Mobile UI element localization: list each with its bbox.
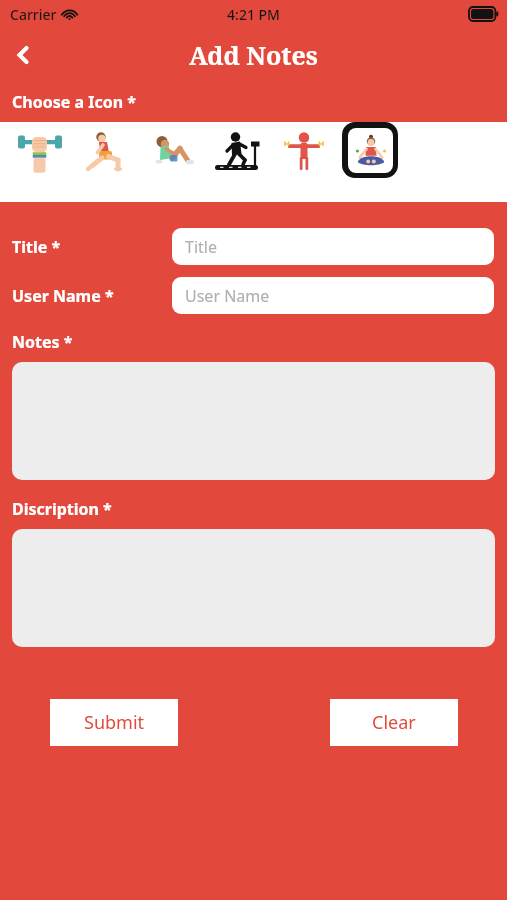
button[interactable]: Title: [172, 228, 494, 265]
staticText: Clear: [372, 710, 416, 735]
staticText: User Name: [185, 285, 270, 307]
staticText: Choose a Icon *: [12, 91, 136, 113]
staticText: Notes *: [12, 331, 73, 353]
button[interactable]: Yoga: [342, 122, 398, 178]
button[interactable]: [12, 362, 495, 480]
staticText: Carrier: [10, 5, 57, 24]
staticText: Discription *: [12, 498, 112, 520]
button[interactable]: [12, 529, 495, 647]
staticText: Add Notes: [189, 38, 318, 72]
button[interactable]: Weightlifting: [12, 122, 68, 178]
button[interactable]: Sit ups: [144, 122, 200, 178]
button[interactable]: Back: [0, 32, 46, 78]
button[interactable]: Lunge: [78, 122, 134, 178]
staticText: Title *: [12, 236, 172, 258]
button[interactable]: Submit: [50, 699, 178, 746]
button[interactable]: Treadmill: [210, 122, 266, 178]
staticText: User Name *: [12, 285, 172, 307]
staticText: 4:21 PM: [227, 5, 280, 24]
staticText: Submit: [84, 710, 145, 735]
staticText: Title: [185, 236, 217, 258]
button[interactable]: Clear: [330, 699, 458, 746]
button[interactable]: User Name: [172, 277, 494, 314]
button[interactable]: Dumbbell raise: [276, 122, 332, 178]
